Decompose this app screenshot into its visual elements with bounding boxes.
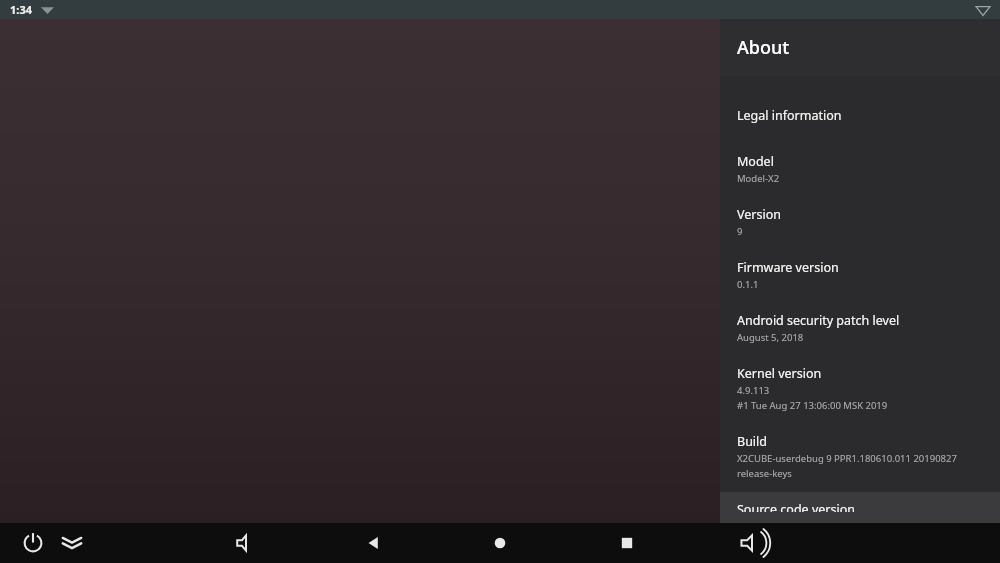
staticText: Kernel version [737, 365, 822, 382]
button[interactable]: Source code version [720, 492, 1000, 523]
staticText: Firmware version [737, 259, 839, 276]
button[interactable]: Power [19, 529, 47, 557]
staticText: About [737, 35, 790, 60]
button[interactable]: Back [359, 529, 387, 557]
staticText: Source code version [737, 501, 855, 512]
staticText: Android security patch level [737, 312, 900, 329]
staticText: Build [737, 433, 767, 450]
button[interactable]: Android security patch level [720, 303, 1000, 356]
button[interactable]: Home [486, 529, 514, 557]
staticText: Version [737, 206, 781, 223]
button[interactable]: Firmware version [720, 250, 1000, 303]
staticText: August 5, 2018 [737, 331, 804, 344]
button[interactable]: Legal information [720, 98, 1000, 144]
staticText: release-keys [737, 467, 792, 480]
button[interactable]: Kernel version [720, 356, 1000, 424]
staticText: Legal information [737, 107, 842, 124]
button[interactable]: Version [720, 197, 1000, 250]
staticText: X2CUBE-userdebug 9 PPR1.180610.011 20190… [737, 452, 957, 465]
button[interactable]: Volume down [232, 529, 260, 557]
button[interactable]: Model [720, 144, 1000, 197]
staticText: 9 [737, 225, 743, 238]
staticText: 0.1.1 [737, 278, 759, 291]
staticText: Model-X2 [737, 172, 780, 185]
button[interactable]: Collapse [58, 529, 86, 557]
button[interactable]: Build [720, 424, 1000, 492]
button[interactable]: Recents [613, 529, 641, 557]
staticText: Model [737, 153, 774, 170]
staticText: #1 Tue Aug 27 13:06:00 MSK 2019 [737, 399, 888, 412]
button[interactable]: Volume up [738, 529, 766, 557]
staticText: 1:34 [10, 2, 32, 17]
staticText: 4.9.113 [737, 384, 770, 397]
